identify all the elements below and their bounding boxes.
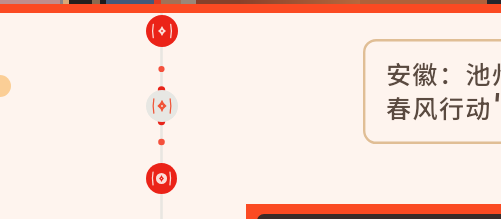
staticText: 安徽：池州 春风行动 — [386, 56, 501, 124]
button[interactable]: Timeline milestone one — [146, 15, 178, 47]
button[interactable]: Timeline milestone two, in progress — [146, 90, 178, 122]
button[interactable]: Timeline milestone three, target — [146, 163, 177, 194]
button[interactable]: 安徽：池州 春风行动 — [363, 39, 501, 144]
